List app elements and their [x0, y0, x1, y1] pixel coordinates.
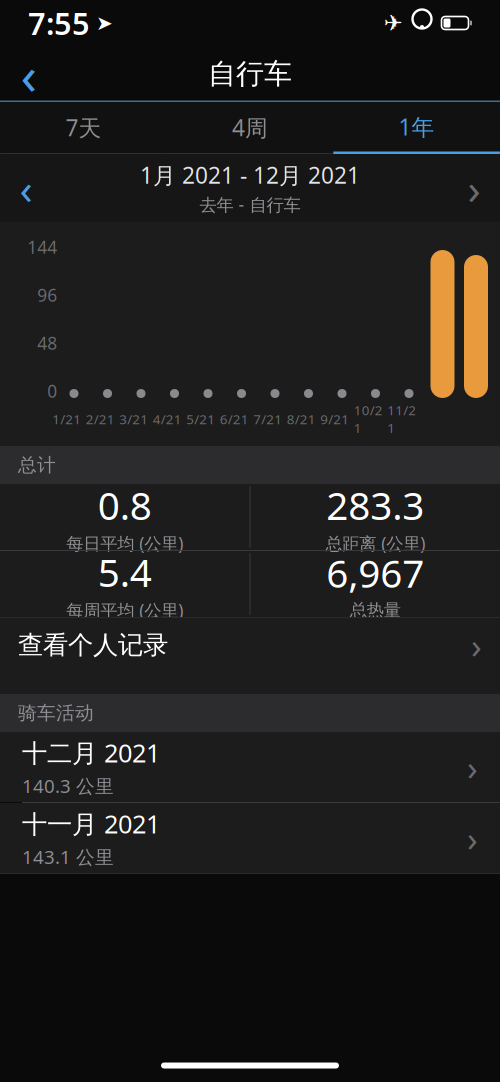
button[interactable]: Previous period: [0, 161, 52, 215]
staticText: ‹: [19, 160, 32, 216]
staticText: 查看个人记录: [18, 629, 168, 660]
staticText: 十一月 2021: [22, 807, 160, 840]
staticText: 96: [37, 283, 57, 306]
staticText: 总计: [18, 453, 56, 476]
staticText: 2/21: [86, 410, 115, 428]
button[interactable]: Next period: [448, 161, 500, 215]
staticText: 0.8: [98, 479, 152, 531]
staticText: ›: [467, 160, 480, 216]
staticText: 143.1 公里: [22, 844, 114, 869]
staticText: 每日平均 (公里): [66, 532, 183, 555]
staticText: 7:55: [28, 3, 90, 43]
staticText: 1年: [399, 112, 435, 142]
staticText: ✈: [383, 10, 402, 36]
staticText: 11/21: [387, 401, 416, 437]
staticText: 去年 - 自行车: [199, 193, 300, 216]
staticText: 6/21: [220, 410, 249, 428]
staticText: 8/21: [287, 410, 316, 428]
staticText: ›: [467, 744, 478, 790]
button[interactable]: 查看个人记录: [0, 618, 500, 672]
staticText: 骑车活动: [18, 701, 94, 724]
staticText: 5/21: [186, 410, 215, 428]
staticText: 9/21: [320, 410, 349, 428]
staticText: 5.4: [98, 546, 152, 598]
button[interactable]: 4周: [167, 102, 333, 154]
staticText: 48: [37, 331, 57, 354]
button[interactable]: 7天: [0, 102, 167, 154]
button[interactable]: Back: [0, 47, 58, 101]
staticText: 1月 2021 - 12月 2021: [140, 160, 360, 190]
staticText: 自行车: [208, 57, 292, 91]
staticText: 10/21: [354, 401, 383, 437]
staticText: 总距离 (公里): [325, 532, 425, 555]
staticText: 总热量: [350, 599, 401, 621]
button[interactable]: 十一月 2021: [0, 803, 500, 873]
staticText: ‹: [20, 39, 37, 109]
staticText: 7天: [65, 112, 101, 142]
staticText: ›: [471, 622, 482, 668]
staticText: 4/21: [153, 410, 182, 428]
staticText: 6,967: [326, 547, 424, 598]
staticText: 144: [27, 235, 57, 258]
staticText: ➤: [96, 12, 113, 34]
staticText: 1/21: [52, 410, 81, 428]
button[interactable]: 十二月 2021: [0, 732, 500, 802]
staticText: 283.3: [326, 479, 424, 531]
staticText: 7/21: [253, 410, 282, 428]
staticText: 十二月 2021: [22, 736, 160, 769]
staticText: 140.3 公里: [22, 773, 114, 798]
staticText: 4周: [232, 112, 268, 142]
button[interactable]: 1年: [333, 102, 500, 154]
staticText: ›: [467, 815, 478, 861]
staticText: 3/21: [119, 410, 148, 428]
staticText: 0: [47, 379, 57, 402]
staticText: 每周平均 (公里): [66, 599, 183, 622]
